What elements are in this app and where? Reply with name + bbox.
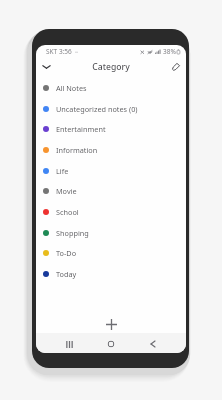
staticText: Life bbox=[56, 166, 69, 176]
staticText: Uncategorized notes (0) bbox=[56, 104, 138, 114]
button[interactable]: To-Do bbox=[36, 242, 186, 263]
staticText: SKT 3:56 bbox=[46, 47, 72, 56]
staticText: Entertainment bbox=[56, 124, 106, 134]
staticText: Movie bbox=[56, 186, 77, 196]
button[interactable]: Movie bbox=[36, 180, 186, 201]
staticText: All Notes bbox=[56, 83, 87, 93]
staticText: To-Do bbox=[56, 248, 77, 258]
staticText: Shopping bbox=[56, 228, 89, 238]
staticText: Today bbox=[56, 269, 77, 279]
button[interactable]: Shopping bbox=[36, 222, 186, 243]
button[interactable]: Uncategorized notes (0) bbox=[36, 98, 186, 119]
staticText: School bbox=[56, 207, 79, 217]
button[interactable]: Recents bbox=[52, 334, 86, 353]
button[interactable]: Edit bbox=[168, 60, 184, 73]
staticText: Category bbox=[92, 61, 130, 73]
button[interactable]: Add category bbox=[102, 315, 120, 333]
button[interactable]: All Notes bbox=[36, 77, 186, 98]
button[interactable]: Today bbox=[36, 263, 186, 284]
staticText: 38% bbox=[163, 47, 176, 56]
button[interactable]: School bbox=[36, 201, 186, 222]
button[interactable]: Back bbox=[136, 334, 170, 353]
button[interactable]: Life bbox=[36, 160, 186, 181]
button[interactable]: Home bbox=[94, 334, 128, 353]
button[interactable]: Collapse bbox=[38, 60, 54, 73]
button[interactable]: Information bbox=[36, 139, 186, 160]
button[interactable]: Entertainment bbox=[36, 118, 186, 139]
staticText: Information bbox=[56, 145, 98, 155]
